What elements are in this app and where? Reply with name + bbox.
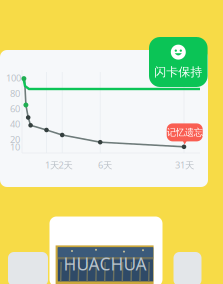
staticText: 6天	[98, 159, 112, 171]
staticText: 80	[10, 87, 20, 99]
staticText: 闪卡保持	[154, 65, 202, 79]
staticText: 31天	[175, 159, 194, 171]
staticText: HUACHUA	[63, 252, 146, 275]
button[interactable]: 闪卡保持	[149, 37, 208, 87]
staticText: 100	[6, 72, 21, 84]
button[interactable]: Flashcard	[55, 107, 168, 177]
button[interactable]: Previous card	[8, 252, 48, 284]
staticText: 2天	[58, 159, 72, 171]
button[interactable]: 记忆遗忘	[0, 0, 223, 284]
staticText: 60	[10, 102, 20, 115]
staticText: 40	[10, 118, 20, 130]
staticText: 20	[10, 133, 20, 145]
staticText: 记忆遗忘	[167, 127, 203, 138]
staticText: 1天	[45, 159, 59, 171]
button[interactable]: Next card	[173, 252, 201, 284]
staticText: 10	[10, 141, 20, 153]
